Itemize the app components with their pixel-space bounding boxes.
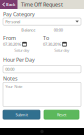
staticText: Time Off Request [21,1,63,8]
staticText: 07-30-2016 [43,41,61,47]
staticText: Reset [57,112,66,117]
staticText: Saturday [14,47,29,53]
staticText: 07-30-2016 [3,41,21,47]
staticText: From [3,34,16,42]
button[interactable]: Personal [3,18,81,25]
button[interactable]: 07-30-2016 [43,42,80,47]
button[interactable]: 07-30-2016 [3,42,40,47]
staticText: Personal [5,19,20,24]
staticText: 00:00 [54,27,63,33]
staticText: Notes [3,75,18,82]
staticText: Hour Per Day [3,56,35,63]
staticText: Balance [21,27,35,33]
staticText: Saturday [54,47,69,53]
button[interactable]: Submit [3,110,40,119]
staticText: Pay Category [3,11,35,18]
button[interactable]: Back [0,0,17,9]
staticText: To [43,34,49,42]
staticText: Submit [15,112,27,117]
staticText: Your Note [5,84,22,89]
staticText: Back [6,2,15,7]
button[interactable]: Menu [38,128,46,135]
button[interactable]: Reset [44,110,79,119]
staticText: 00:00 [5,66,14,72]
